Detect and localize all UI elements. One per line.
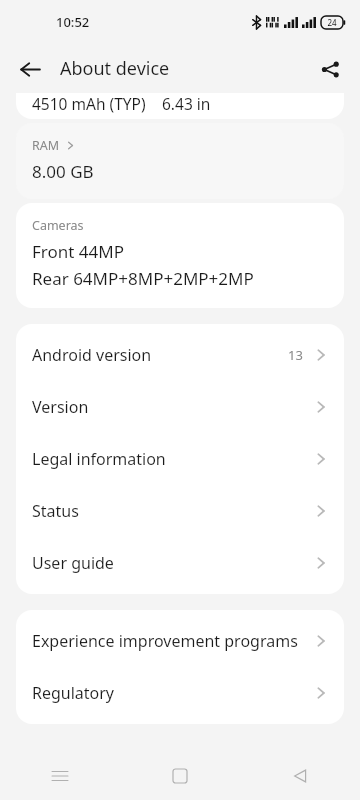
button[interactable]: Back bbox=[8, 47, 52, 91]
button[interactable]: 4510 mAh (TYP) bbox=[16, 93, 344, 119]
button[interactable]: Cameras bbox=[16, 203, 344, 308]
staticText: 4510 mAh (TYP) bbox=[32, 93, 146, 114]
staticText: 24 bbox=[327, 17, 337, 28]
button[interactable]: User guide bbox=[16, 537, 344, 589]
staticText: Status bbox=[32, 500, 313, 522]
staticText: Legal information bbox=[32, 448, 313, 470]
staticText: Rear 64MP+8MP+2MP+2MP bbox=[32, 267, 254, 290]
staticText: User guide bbox=[32, 552, 313, 574]
staticText: Regulatory bbox=[32, 682, 313, 704]
staticText: 6.43 in bbox=[162, 93, 211, 114]
staticText: RAM bbox=[32, 137, 60, 154]
staticText: 10:52 bbox=[56, 13, 90, 31]
button[interactable]: Status bbox=[16, 485, 344, 537]
button[interactable]: Regulatory bbox=[16, 667, 344, 719]
staticText: Experience improvement programs bbox=[32, 630, 313, 652]
button[interactable]: Share bbox=[308, 47, 352, 91]
button[interactable]: Home bbox=[120, 752, 240, 800]
button[interactable]: RAM bbox=[16, 123, 344, 199]
button[interactable]: Version bbox=[16, 381, 344, 433]
staticText: Front 44MP bbox=[32, 240, 125, 263]
staticText: About device bbox=[60, 56, 170, 81]
staticText: 13 bbox=[288, 346, 303, 364]
staticText: 8.00 GB bbox=[32, 160, 94, 183]
button[interactable]: Legal information bbox=[16, 433, 344, 485]
button[interactable]: Recents bbox=[0, 752, 120, 800]
staticText: Version bbox=[32, 396, 313, 418]
staticText: Android version bbox=[32, 344, 288, 366]
button[interactable]: Android version bbox=[16, 329, 344, 381]
button[interactable]: Experience improvement programs bbox=[16, 615, 344, 667]
button[interactable]: Back bbox=[240, 752, 360, 800]
staticText: Cameras bbox=[32, 217, 84, 234]
